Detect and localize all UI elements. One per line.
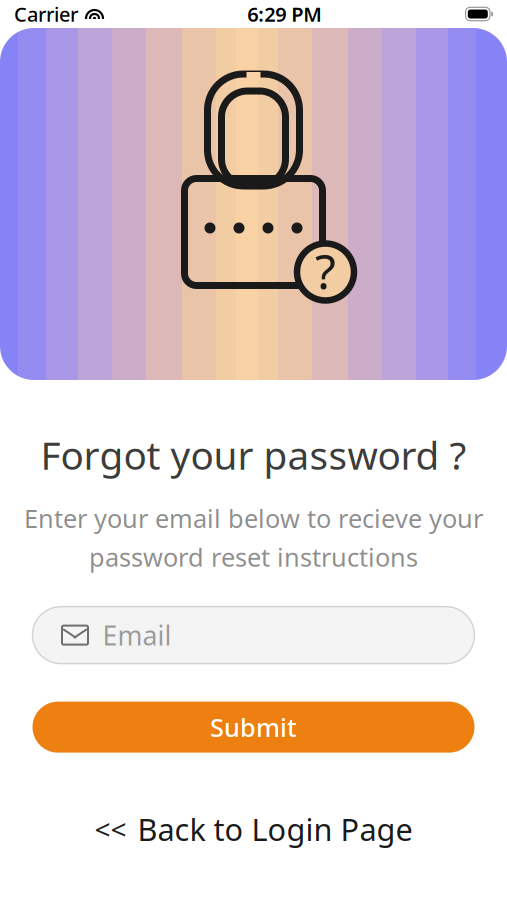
staticText: password reset instructions	[89, 540, 418, 574]
button[interactable]: Email	[32, 607, 474, 664]
staticText: Submit	[210, 710, 297, 744]
staticText: Enter your email below to recieve your	[24, 501, 483, 535]
staticText: Carrier	[14, 1, 78, 27]
staticText: 6:29 PM	[247, 1, 322, 27]
button[interactable]: <<	[78, 801, 428, 857]
button[interactable]: Submit	[32, 702, 474, 753]
staticText: <<	[94, 810, 126, 848]
staticText: Back to Login Page	[137, 809, 412, 849]
staticText: Email	[102, 617, 171, 653]
staticText: Forgot your password ?	[40, 429, 466, 480]
staticText: ?	[315, 239, 336, 303]
